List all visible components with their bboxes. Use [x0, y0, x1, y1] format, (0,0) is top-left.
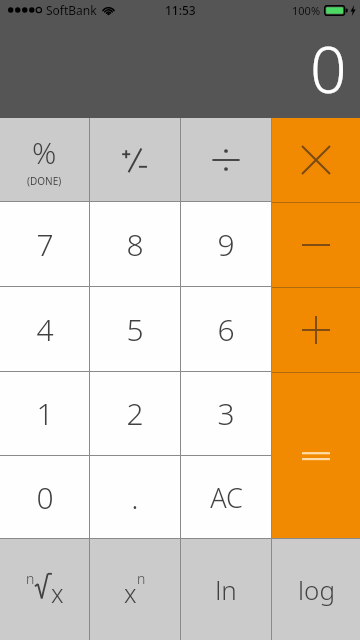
- staticText: 6: [217, 309, 235, 350]
- staticText: %: [32, 132, 57, 173]
- staticText: 11:53: [165, 2, 196, 18]
- button[interactable]: 9: [181, 202, 271, 286]
- button[interactable]: 2: [90, 372, 180, 455]
- button[interactable]: x to the power n: [90, 539, 180, 640]
- button[interactable]: 5: [90, 287, 180, 371]
- staticText: 2: [126, 393, 144, 434]
- button[interactable]: ln: [181, 539, 271, 640]
- staticText: (DONE): [27, 174, 62, 188]
- button[interactable]: Subtract: [272, 203, 360, 287]
- button[interactable]: 7: [0, 202, 89, 286]
- button[interactable]: 4: [0, 287, 89, 371]
- staticText: 4: [36, 309, 54, 350]
- button[interactable]: 3: [181, 372, 271, 455]
- button[interactable]: log: [272, 539, 360, 640]
- button[interactable]: AC: [181, 456, 271, 538]
- staticText: AC: [210, 479, 243, 516]
- staticText: 8: [126, 224, 144, 265]
- staticText: 0: [36, 477, 54, 518]
- button[interactable]: Divide: [181, 118, 271, 201]
- button[interactable]: Equals: [272, 373, 360, 538]
- staticText: 5: [126, 309, 144, 350]
- staticText: 9: [217, 224, 235, 265]
- staticText: n: [26, 569, 35, 588]
- button[interactable]: Plus minus: [90, 118, 180, 201]
- button[interactable]: 6: [181, 287, 271, 371]
- button[interactable]: 0: [0, 456, 89, 538]
- staticText: ln: [215, 572, 237, 607]
- button[interactable]: nth root of x: [0, 539, 89, 640]
- button[interactable]: 1: [0, 372, 89, 455]
- staticText: 0: [310, 25, 347, 112]
- button[interactable]: Add: [272, 288, 360, 372]
- button[interactable]: %: [0, 118, 89, 201]
- staticText: 3: [217, 393, 235, 434]
- staticText: 100%: [292, 3, 321, 18]
- staticText: 7: [36, 224, 54, 265]
- staticText: SoftBank: [46, 2, 97, 18]
- button[interactable]: .: [90, 456, 180, 538]
- button[interactable]: 8: [90, 202, 180, 286]
- staticText: x: [51, 576, 64, 610]
- staticText: x: [124, 576, 137, 610]
- button[interactable]: Multiply: [272, 118, 360, 202]
- staticText: 1: [36, 393, 54, 434]
- staticText: log: [298, 572, 335, 607]
- staticText: n: [137, 569, 146, 588]
- button[interactable]: Display 0: [0, 20, 360, 118]
- staticText: .: [131, 477, 139, 518]
